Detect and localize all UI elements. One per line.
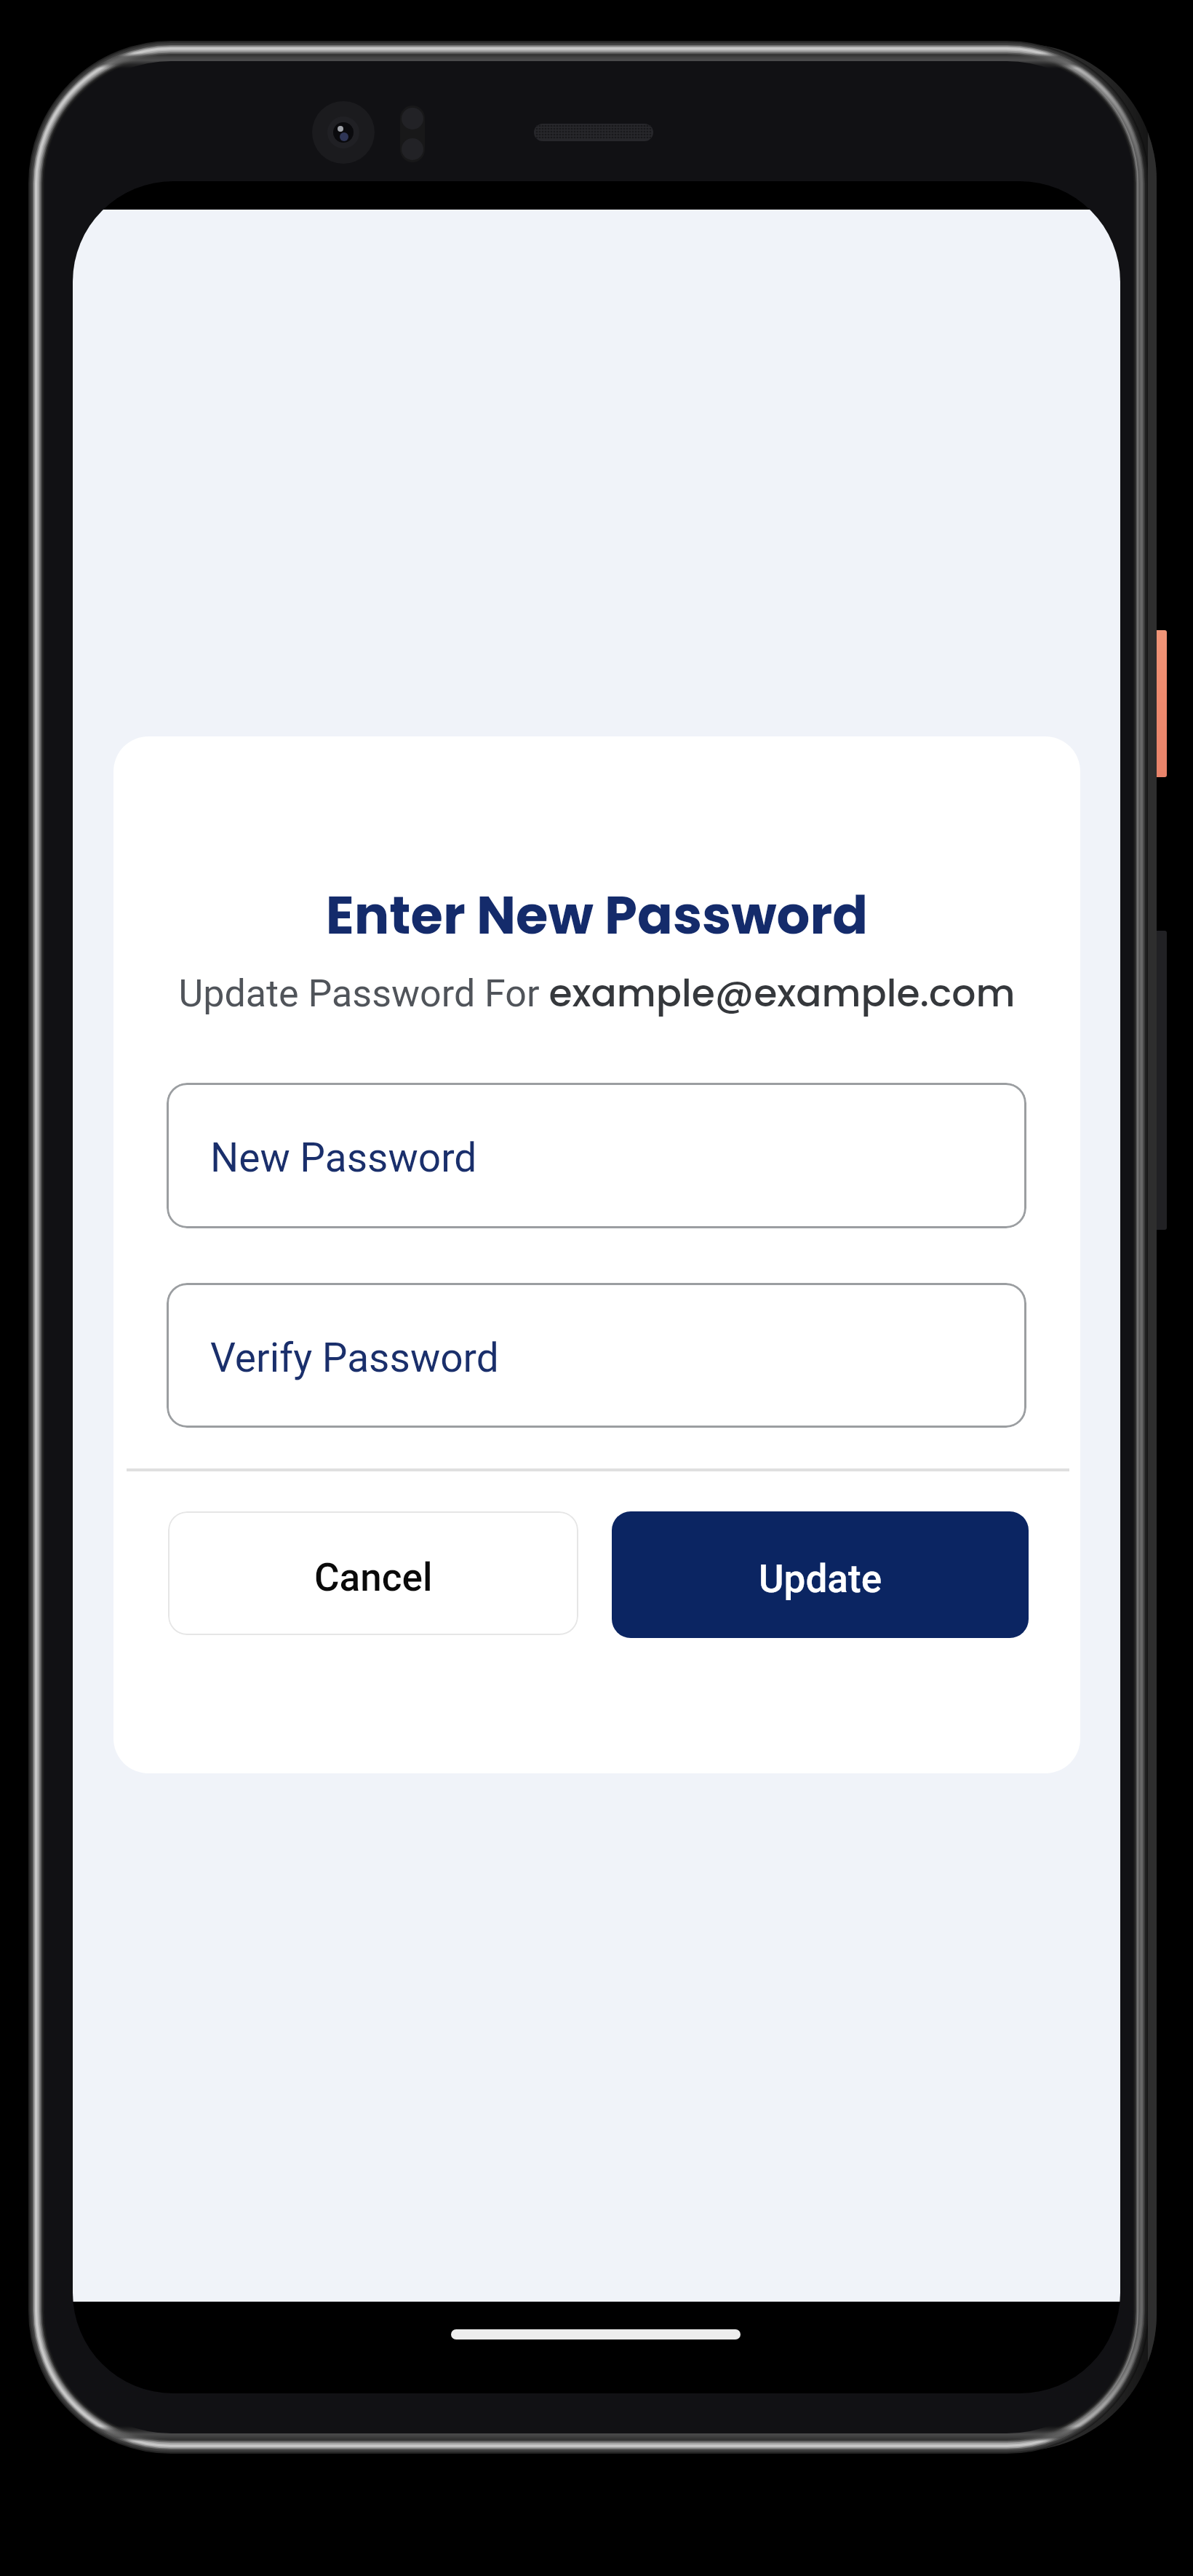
staticText: Update	[759, 1557, 882, 1602]
button[interactable]: New Password	[167, 1083, 1026, 1228]
button[interactable]: Update	[612, 1511, 1029, 1638]
staticText: Enter New Password	[113, 878, 1080, 952]
button[interactable]: Verify Password	[167, 1283, 1026, 1428]
staticText: New Password	[210, 1134, 477, 1181]
button[interactable]: Cancel	[168, 1511, 578, 1635]
staticText: Update Password For example@example.com	[113, 966, 1080, 1019]
staticText: Verify Password	[210, 1335, 499, 1381]
button[interactable]: Power	[1157, 630, 1167, 777]
staticText: Cancel	[314, 1555, 433, 1600]
